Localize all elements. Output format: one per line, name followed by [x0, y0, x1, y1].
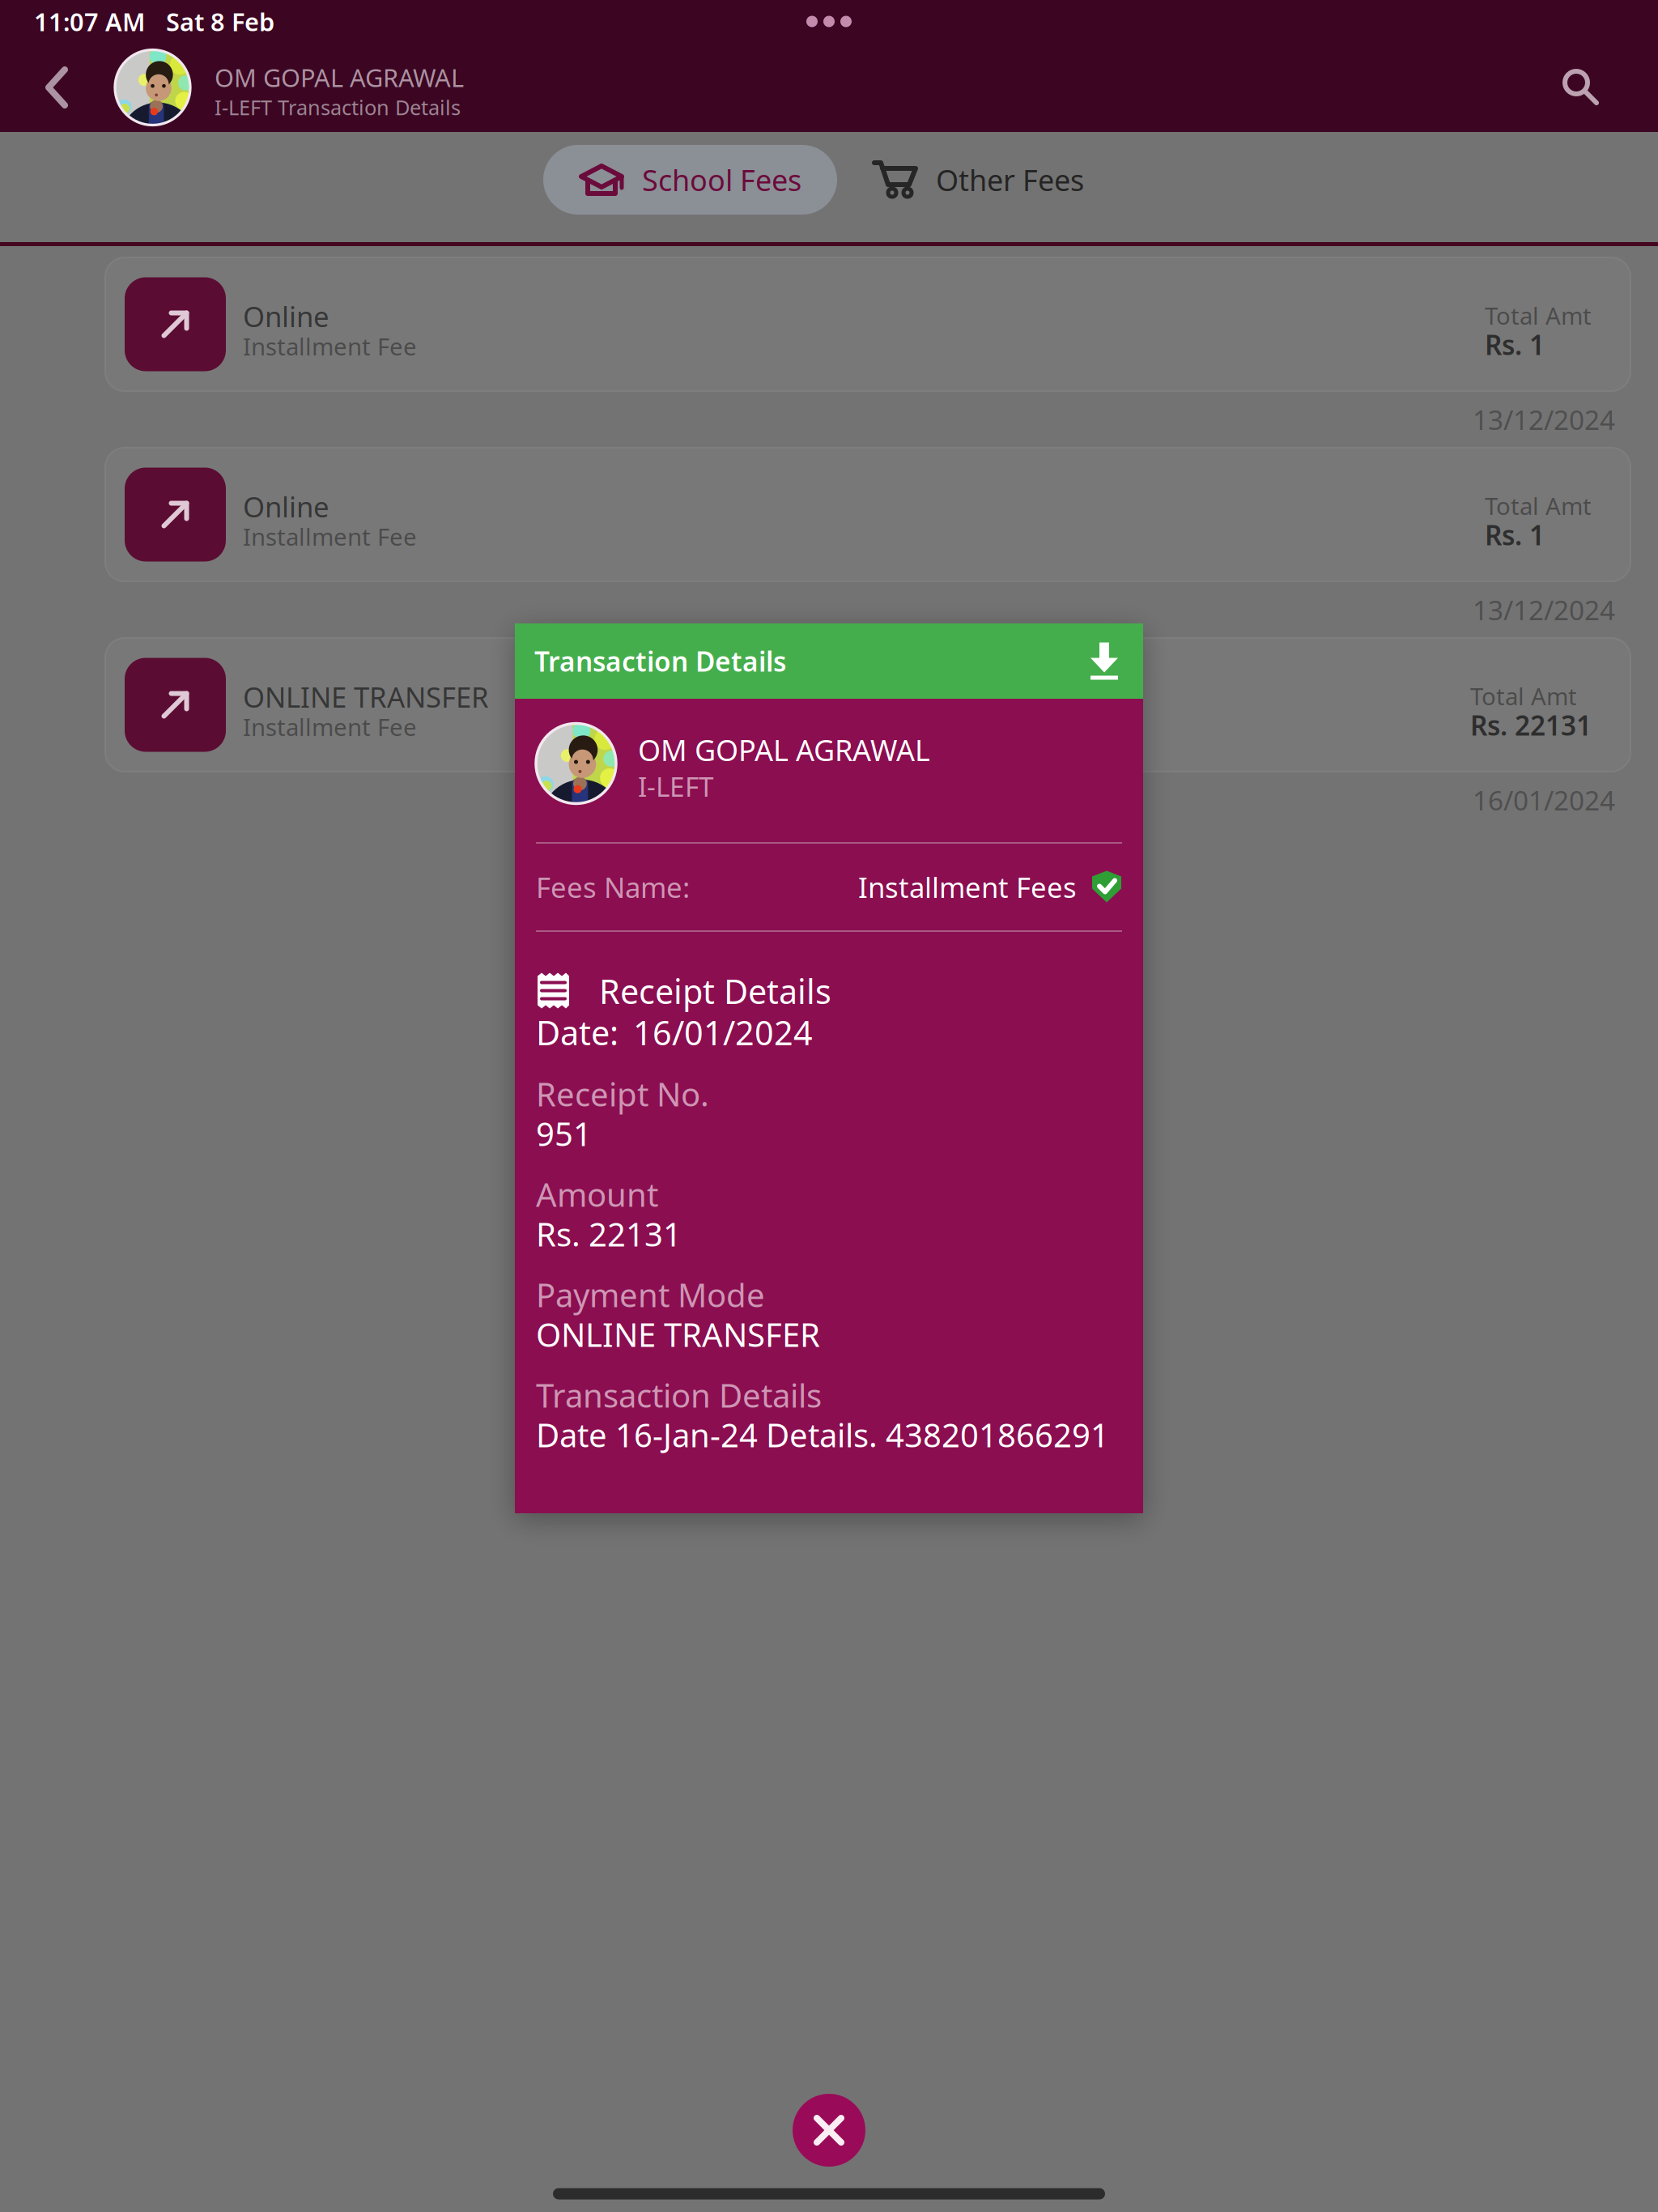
staticText: OM GOPAL AGRAWAL	[638, 730, 930, 769]
staticText: ONLINE TRANSFER	[243, 678, 489, 715]
staticText: Total Amt	[1485, 490, 1592, 521]
staticText: Fees Name:	[536, 868, 690, 906]
staticText: Receipt Details	[599, 969, 831, 1013]
button[interactable]: Online	[105, 257, 1630, 391]
button[interactable]: Close	[793, 2094, 865, 2167]
staticText: I-LEFT Transaction Details	[215, 94, 461, 121]
button[interactable]: Search	[1532, 43, 1658, 132]
staticText: OM GOPAL AGRAWAL	[215, 61, 464, 94]
staticText: Rs. 22131	[1470, 707, 1592, 743]
staticText: Online	[243, 298, 329, 335]
button[interactable]: Other Fees	[837, 145, 1115, 215]
staticText: Sat 8 Feb	[166, 5, 274, 38]
staticText: 11:07 AM	[34, 5, 145, 38]
staticText: Rs. 22131	[536, 1212, 682, 1255]
staticText: 13/12/2024	[1473, 592, 1615, 628]
staticText: Total Amt	[1470, 680, 1577, 712]
staticText: 16/01/2024	[633, 1010, 813, 1055]
staticText: Date:	[536, 1010, 619, 1055]
staticText: ONLINE TRANSFER	[536, 1313, 820, 1356]
staticText: School Fees	[642, 160, 801, 199]
button[interactable]: Online	[105, 448, 1630, 581]
staticText: Date 16-Jan-24 Details. 438201866291	[536, 1413, 1109, 1456]
button[interactable]: Download receipt	[1090, 642, 1119, 681]
staticText: Rs. 1	[1485, 517, 1545, 553]
staticText: 13/12/2024	[1473, 402, 1615, 437]
staticText: Transaction Details	[536, 1374, 822, 1417]
staticText: Other Fees	[936, 160, 1084, 199]
button[interactable]: School Fees	[543, 145, 837, 215]
staticText: Total Amt	[1485, 300, 1592, 331]
staticText: Installment Fees	[858, 868, 1077, 906]
staticText: Receipt No.	[536, 1072, 709, 1115]
staticText: 951	[536, 1112, 592, 1155]
button[interactable]: ONLINE TRANSFER	[105, 638, 1630, 772]
staticText: Online	[243, 488, 329, 525]
staticText: 16/01/2024	[1473, 782, 1615, 818]
staticText: Transaction Details	[534, 643, 786, 679]
staticText: Installment Fee	[243, 711, 417, 742]
staticText: Installment Fee	[243, 330, 417, 362]
staticText: I-LEFT	[638, 768, 714, 804]
staticText: Payment Mode	[536, 1273, 765, 1316]
button[interactable]: Back	[0, 43, 93, 132]
staticText: Rs. 1	[1485, 327, 1545, 362]
staticText: Amount	[536, 1173, 658, 1216]
staticText: Installment Fee	[243, 521, 417, 552]
